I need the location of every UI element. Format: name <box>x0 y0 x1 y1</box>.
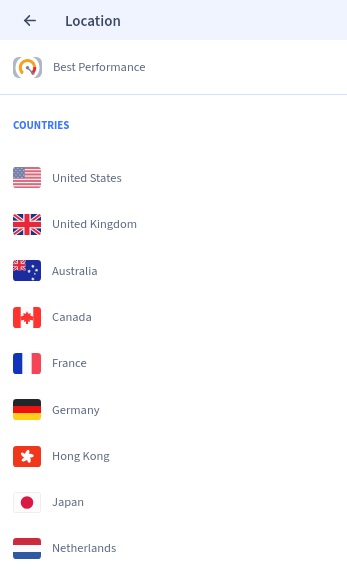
button[interactable]: France <box>0 340 347 386</box>
button[interactable]: United States <box>0 154 347 201</box>
staticText: Best Performance <box>53 58 146 76</box>
staticText: COUNTRIES <box>13 118 70 134</box>
button[interactable]: Germany <box>0 386 347 433</box>
staticText: Canada <box>52 308 92 326</box>
button[interactable]: Best Performance <box>0 40 347 94</box>
staticText: Germany <box>52 401 100 419</box>
staticText: Japan <box>52 493 85 511</box>
staticText: France <box>52 354 87 372</box>
staticText: Netherlands <box>52 539 117 557</box>
staticText: United Kingdom <box>52 215 138 233</box>
staticText: United States <box>52 169 122 187</box>
staticText: Location <box>65 11 121 32</box>
staticText: Australia <box>52 262 98 280</box>
button[interactable]: Back <box>10 0 50 40</box>
button[interactable]: Hong Kong <box>0 433 347 479</box>
staticText: Hong Kong <box>52 447 110 465</box>
button[interactable]: Netherlands <box>0 525 347 571</box>
button[interactable]: Canada <box>0 294 347 340</box>
button[interactable]: United Kingdom <box>0 201 347 247</box>
button[interactable]: Japan <box>0 479 347 525</box>
button[interactable]: Australia <box>0 247 347 294</box>
